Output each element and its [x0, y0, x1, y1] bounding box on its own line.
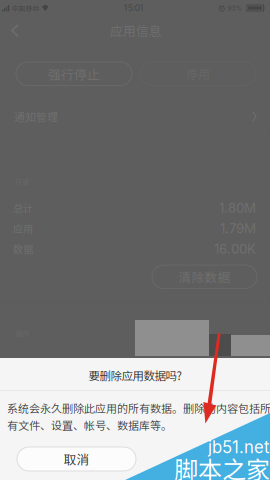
staticText: 数据 [13, 241, 33, 256]
button[interactable]: 清除数据 [152, 265, 257, 288]
staticText: 取消 [63, 450, 89, 468]
staticText: 1.79M [220, 220, 256, 236]
staticText: 通知管理 [14, 109, 58, 124]
staticText: 清除数据 [178, 268, 230, 286]
staticText: 有文件、设置、帐号、数据库等。 [7, 417, 172, 433]
staticText: 1.80M [219, 200, 256, 216]
staticText: 中国移动 [11, 3, 39, 13]
staticText: 要删除应用数据吗? [88, 367, 181, 384]
staticText: 系统会永久删除此应用的所有数据。删除的内容包括所 [7, 400, 270, 416]
staticText: 15:01 [124, 3, 144, 13]
staticText: 16.00K [214, 241, 256, 257]
button[interactable]: 取消 [17, 447, 136, 471]
staticText: 强行停止 [48, 64, 100, 83]
staticText: 脚本之家 [174, 451, 270, 480]
staticText: 应用 [13, 221, 33, 236]
staticText: 总计 [13, 200, 33, 215]
staticText: jb51.net [208, 437, 269, 457]
staticText: 93% [227, 4, 242, 12]
button[interactable]: 强行停止 [16, 62, 132, 85]
staticText: 应用信息 [110, 21, 162, 40]
